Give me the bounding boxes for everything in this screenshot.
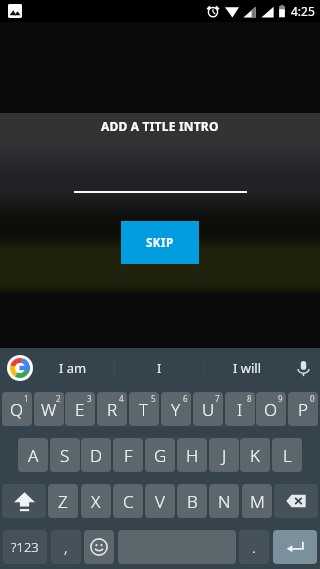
button[interactable]: C — [113, 484, 143, 518]
staticText: . — [252, 537, 256, 557]
staticText: B — [187, 490, 198, 513]
button[interactable]: N — [209, 484, 239, 518]
staticText: L — [283, 444, 292, 467]
staticText: O — [264, 398, 278, 421]
staticText: 4 — [119, 393, 124, 404]
staticText: Z — [58, 490, 68, 513]
staticText: R — [107, 398, 118, 421]
button[interactable]: Backspace — [274, 484, 318, 518]
button[interactable]: I — [225, 392, 255, 426]
button[interactable]: I will — [204, 348, 290, 388]
staticText: N — [218, 490, 231, 513]
staticText: I am — [59, 359, 87, 377]
button[interactable]: P — [288, 392, 318, 426]
staticText: 5 — [151, 393, 156, 404]
button[interactable]: . — [239, 530, 269, 564]
button[interactable]: Enter — [273, 530, 317, 564]
button[interactable]: G — [145, 438, 175, 472]
button[interactable]: L — [272, 438, 302, 472]
button[interactable]: K — [240, 438, 270, 472]
staticText: X — [91, 490, 101, 513]
staticText: K — [250, 444, 260, 467]
button[interactable]: I am — [32, 348, 114, 388]
staticText: P — [298, 398, 309, 421]
staticText: 7 — [215, 393, 220, 404]
staticText: SKIP — [146, 235, 174, 251]
button[interactable]: R — [97, 392, 127, 426]
staticText: G — [154, 444, 167, 467]
staticText: J — [222, 444, 227, 467]
staticText: S — [60, 444, 70, 467]
staticText: D — [90, 444, 103, 467]
button[interactable]: Q — [2, 392, 32, 426]
staticText: Q — [10, 398, 24, 421]
staticText: 1 — [24, 393, 29, 404]
button[interactable]: Google — [7, 355, 33, 381]
staticText: 9 — [278, 393, 283, 404]
staticText: C — [123, 490, 134, 513]
button[interactable]: , — [51, 530, 81, 564]
button[interactable]: SKIP — [121, 221, 199, 264]
staticText: 6 — [183, 393, 188, 404]
staticText: Y — [171, 398, 181, 421]
button[interactable]: Voice input — [288, 353, 318, 383]
button[interactable]: F — [113, 438, 143, 472]
button[interactable]: B — [177, 484, 207, 518]
staticText: 4:25 — [291, 3, 315, 19]
staticText: M — [250, 490, 265, 513]
staticText: I will — [233, 359, 262, 377]
button[interactable]: M — [242, 484, 272, 518]
staticText: I — [157, 359, 162, 377]
button[interactable]: D — [81, 438, 111, 472]
staticText: ADD A TITLE INTRO — [101, 118, 219, 134]
staticText: , — [64, 537, 68, 557]
button[interactable]: O — [256, 392, 286, 426]
button[interactable]: E — [65, 392, 95, 426]
button[interactable]: X — [81, 484, 111, 518]
staticText: 0 — [310, 393, 315, 404]
button[interactable]: W — [34, 392, 64, 426]
staticText: 3 — [87, 393, 92, 404]
staticText: A — [28, 444, 39, 467]
staticText: F — [124, 444, 133, 467]
button[interactable]: Z — [48, 484, 78, 518]
button[interactable]: Emoji — [84, 530, 114, 564]
staticText: 2 — [56, 393, 61, 404]
button[interactable]: U — [193, 392, 223, 426]
button[interactable]: A — [18, 438, 48, 472]
staticText: T — [139, 398, 149, 421]
button[interactable]: S — [50, 438, 80, 472]
button[interactable]: V — [145, 484, 175, 518]
button[interactable]: H — [177, 438, 207, 472]
staticText: I — [237, 398, 243, 421]
button[interactable]: Shift — [2, 484, 46, 518]
button[interactable]: Y — [161, 392, 191, 426]
staticText: 8 — [247, 393, 252, 404]
staticText: H — [186, 444, 199, 467]
button[interactable]: J — [209, 438, 239, 472]
button[interactable]: T — [129, 392, 159, 426]
staticText: W — [41, 398, 57, 421]
staticText: E — [75, 398, 85, 421]
staticText: V — [155, 490, 165, 513]
button[interactable]: I — [115, 348, 203, 388]
staticText: U — [202, 398, 215, 421]
button[interactable]: ?123 — [3, 530, 47, 564]
staticText: ?123 — [11, 538, 39, 556]
